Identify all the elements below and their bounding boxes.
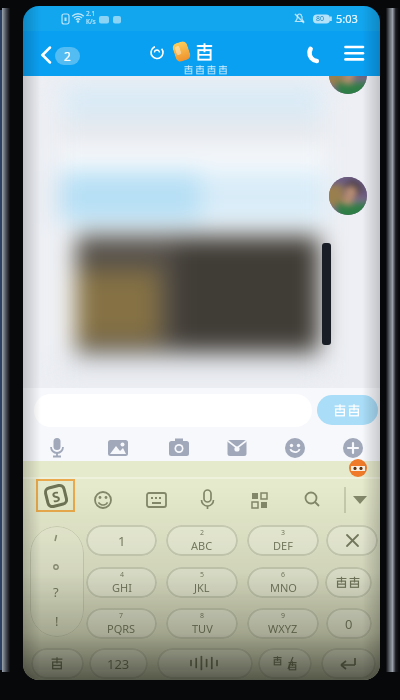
staticText: MNO [270,580,297,595]
button[interactable] [282,435,308,461]
button[interactable] [317,395,378,425]
staticText: 0 [345,615,353,633]
button[interactable]: 6 [247,567,319,598]
button[interactable] [329,177,367,215]
button[interactable]: 7 [86,608,157,639]
button[interactable] [224,435,250,461]
button[interactable] [193,486,221,514]
button[interactable]: 123 [89,648,148,679]
staticText: 2 [200,528,205,538]
button[interactable]: 0 [326,608,372,639]
button[interactable]: S [36,479,75,512]
staticText: 2 [64,48,71,64]
button[interactable] [349,486,377,514]
button[interactable]: 1 [86,525,157,556]
button[interactable]: 2 [37,45,83,65]
button[interactable] [44,435,70,461]
button[interactable] [329,76,367,94]
button[interactable] [344,43,366,65]
staticText: JKL [194,580,210,595]
staticText: 7 [119,611,124,621]
button[interactable]: 9 [247,608,319,639]
staticText: 3 [281,528,286,538]
button[interactable]: ? [30,526,84,637]
button[interactable] [340,435,366,461]
button[interactable] [89,486,117,514]
button[interactable] [144,486,172,514]
button[interactable]: 4 [86,567,157,598]
button[interactable] [249,486,277,514]
staticText: WXYZ [268,621,298,636]
button[interactable] [258,648,312,679]
button[interactable] [157,648,253,679]
staticText: GHI [112,580,132,595]
staticText: ! [55,612,59,630]
button[interactable] [31,648,84,679]
button[interactable] [325,567,372,598]
button[interactable]: 2 [166,525,238,556]
staticText: S [50,486,62,507]
staticText: 9 [281,611,286,621]
button[interactable]: 5 [166,567,238,598]
staticText: K/s [86,17,96,26]
button[interactable] [326,525,378,556]
button[interactable] [321,648,376,679]
staticText: 6 [281,570,286,580]
staticText: 5:03 [336,11,358,26]
staticText: 2.1 [86,9,96,18]
button[interactable] [297,486,325,514]
staticText: ? [53,583,59,601]
staticText: 8 [200,611,205,621]
staticText: 4 [120,570,125,580]
staticText: 123 [107,655,130,673]
staticText: TUV [192,621,213,636]
button[interactable]: 8 [166,608,238,639]
button[interactable] [105,435,131,461]
button[interactable]: 3 [247,525,319,556]
button[interactable] [304,41,330,67]
staticText: ABC [191,538,213,553]
staticText: 80 [316,14,325,24]
staticText: PQRS [107,621,136,636]
staticText: 1 [118,532,126,550]
staticText: 5 [200,570,205,580]
button[interactable] [166,435,192,461]
staticText: DEF [273,538,293,553]
